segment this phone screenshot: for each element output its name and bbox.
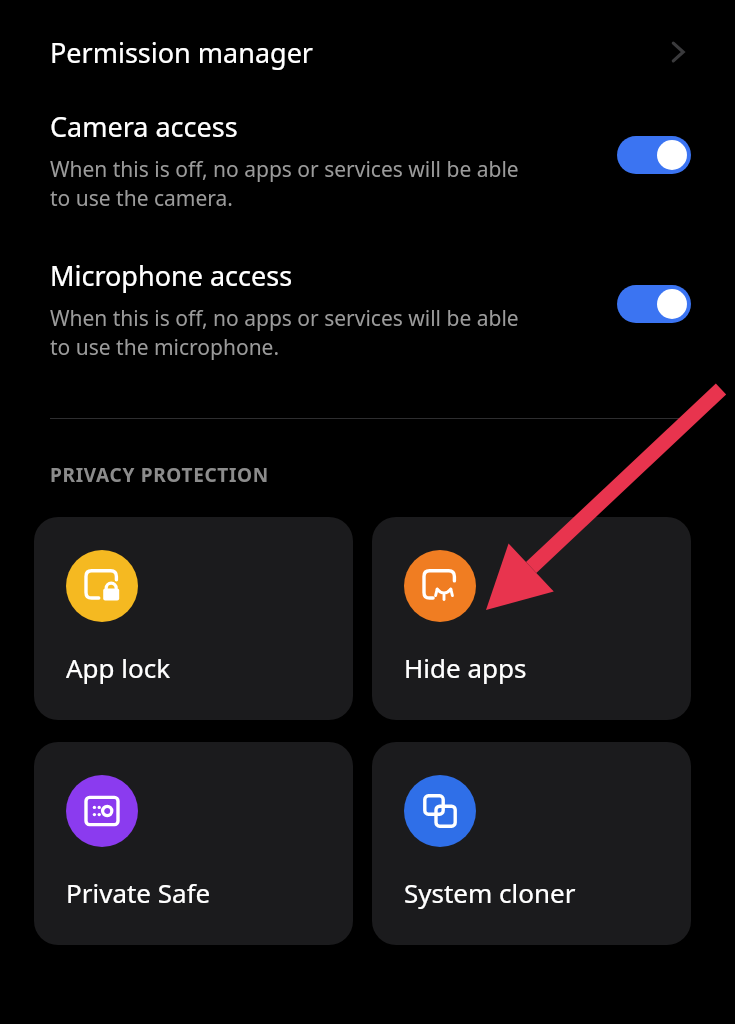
button[interactable]: Microphone access toggle, on <box>617 285 691 323</box>
button[interactable]: Permission manager <box>0 0 735 104</box>
staticText: Hide apps <box>404 650 527 685</box>
staticText: to use the microphone. <box>50 333 280 362</box>
staticText: Private Safe <box>66 875 211 910</box>
staticText: System cloner <box>404 875 576 910</box>
staticText: App lock <box>66 650 171 685</box>
staticText: to use the camera. <box>50 184 233 213</box>
button[interactable]: App lock <box>34 517 353 720</box>
staticText: When this is off, no apps or services wi… <box>50 304 519 333</box>
button[interactable]: Camera access <box>0 104 735 217</box>
staticText: Permission manager <box>50 34 314 71</box>
staticText: Camera access <box>50 108 238 145</box>
button[interactable]: Camera access toggle, on <box>617 136 691 174</box>
staticText: When this is off, no apps or services wi… <box>50 155 519 184</box>
staticText: PRIVACY PROTECTION <box>50 462 269 488</box>
staticText: Microphone access <box>50 257 293 294</box>
button[interactable]: Private Safe <box>34 742 353 945</box>
button[interactable]: Microphone access <box>0 253 735 366</box>
button[interactable]: System cloner <box>372 742 691 945</box>
button[interactable]: Hide apps <box>372 517 691 720</box>
